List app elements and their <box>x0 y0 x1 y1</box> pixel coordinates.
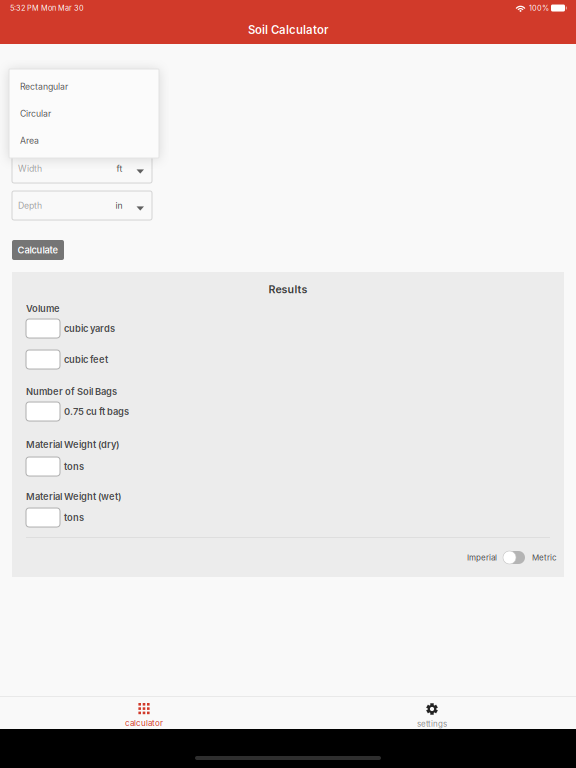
staticText: settings <box>417 719 447 729</box>
staticText: calculator <box>125 718 163 728</box>
staticText: 100% <box>529 4 549 12</box>
button[interactable]: Circular <box>9 100 159 127</box>
staticText: Mon Mar 30 <box>41 4 84 12</box>
staticText: Results <box>268 283 307 296</box>
button[interactable]: Area <box>9 127 159 154</box>
staticText: Volume <box>26 303 60 314</box>
staticText: Soil Calculator <box>248 23 328 37</box>
staticText: Imperial <box>467 553 497 562</box>
button[interactable]: Choose unit <box>122 155 152 182</box>
staticText: Area <box>20 135 39 146</box>
staticText: Material Weight (dry) <box>26 439 119 450</box>
staticText: Calculate <box>17 244 58 256</box>
staticText: 0.75 cu ft bags <box>64 406 129 417</box>
staticText: Number of Soil Bags <box>26 386 117 397</box>
staticText: cubic feet <box>64 354 108 365</box>
staticText: tons <box>64 512 84 523</box>
button[interactable]: Choose unit <box>122 192 152 219</box>
button[interactable]: Calculate <box>12 240 64 260</box>
staticText: 5:32 PM <box>10 4 39 12</box>
staticText: Width <box>18 163 42 174</box>
staticText: ft <box>116 163 122 174</box>
button[interactable]: Rectangular <box>9 73 159 100</box>
staticText: Material Weight (wet) <box>26 491 121 502</box>
staticText: Circular <box>20 108 51 119</box>
staticText: Depth <box>18 200 42 211</box>
staticText: tons <box>64 461 84 472</box>
staticText: Metric <box>532 553 557 562</box>
button[interactable]: Toggle Imperial or Metric units <box>497 545 532 570</box>
staticText: cubic yards <box>64 323 115 334</box>
staticText: in <box>115 200 122 211</box>
button[interactable]: settings <box>288 696 576 729</box>
button[interactable]: calculator <box>0 696 288 729</box>
staticText: Rectangular <box>20 81 68 92</box>
